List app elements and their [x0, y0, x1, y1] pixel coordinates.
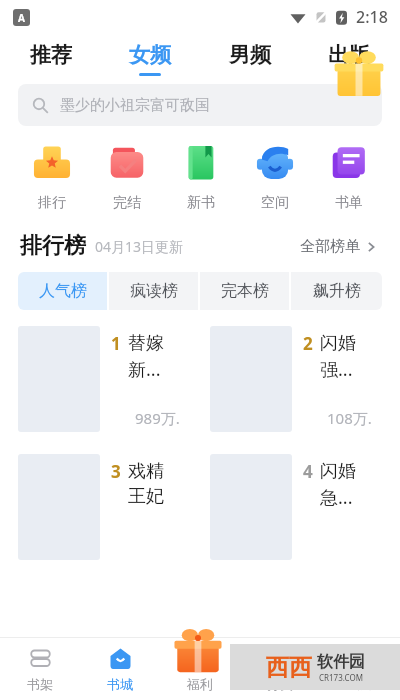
staticText: 排行榜 — [20, 232, 86, 260]
button[interactable]: 完结 — [89, 142, 164, 212]
button[interactable]: 空间 — [238, 142, 312, 212]
button[interactable]: 新书 — [164, 142, 238, 212]
button[interactable]: 疯读榜 — [109, 272, 198, 310]
staticText: 书架 — [27, 676, 53, 692]
staticText: 书城 — [107, 676, 133, 692]
staticText: 04月13日更新 — [95, 237, 184, 256]
staticText: 我的 — [347, 676, 373, 692]
staticText: 分类 — [267, 676, 293, 692]
button[interactable]: Categories — [240, 638, 320, 700]
button[interactable]: 3 — [18, 454, 190, 560]
staticText: 闪婚 — [320, 332, 356, 355]
staticText: 急... — [320, 485, 353, 510]
button[interactable]: Gift — [170, 624, 226, 680]
staticText: 男频 — [229, 42, 271, 68]
button[interactable]: Bookshelf — [0, 638, 80, 700]
staticText: 出版 — [328, 42, 370, 68]
staticText: 全部榜单 — [300, 237, 360, 256]
staticText: 1 — [111, 332, 121, 355]
button[interactable]: 1 — [18, 326, 190, 432]
staticText: 4 — [303, 460, 313, 483]
button[interactable]: 完本榜 — [200, 272, 289, 310]
staticText: 2:18 — [356, 6, 388, 28]
staticText: 替嫁 — [128, 332, 164, 355]
staticText: 飙升榜 — [313, 281, 361, 301]
staticText: 戏精 — [128, 460, 164, 483]
staticText: 完结 — [113, 194, 141, 212]
staticText: 空间 — [261, 194, 289, 212]
button[interactable]: 出版 — [324, 42, 374, 76]
staticText: 推荐 — [30, 42, 72, 68]
button[interactable]: 推荐 — [26, 42, 76, 76]
button[interactable]: Rewards — [160, 638, 240, 700]
staticText: 强... — [320, 357, 353, 382]
staticText: 2 — [303, 332, 313, 355]
button[interactable]: Bookstore — [80, 638, 160, 700]
button[interactable]: 墨少的小祖宗富可敌国 — [18, 84, 382, 126]
staticText: 完本榜 — [221, 281, 269, 301]
button[interactable]: 男频 — [225, 42, 275, 76]
staticText: 闪婚 — [320, 460, 356, 483]
staticText: A — [18, 11, 25, 25]
staticText: 女频 — [129, 42, 171, 68]
staticText: 989万. — [135, 408, 180, 428]
button[interactable]: 2 — [210, 326, 382, 432]
button[interactable]: 飙升榜 — [291, 272, 382, 310]
staticText: 3 — [111, 460, 121, 483]
staticText: 西西 — [266, 653, 312, 682]
staticText: 王妃 — [128, 485, 164, 508]
staticText: 新... — [128, 357, 161, 382]
button[interactable]: 排行 — [14, 142, 89, 212]
staticText: 福利 — [187, 676, 213, 692]
staticText: 人气榜 — [39, 281, 87, 301]
button[interactable]: Profile — [320, 638, 400, 700]
button[interactable]: Gift — [330, 46, 388, 104]
button[interactable]: 书单 — [312, 142, 386, 212]
staticText: 108万. — [327, 408, 372, 428]
staticText: 软件园 — [317, 652, 365, 672]
staticText: 墨少的小祖宗富可敌国 — [60, 96, 210, 115]
button[interactable]: 人气榜 — [18, 272, 107, 310]
button[interactable]: 全部榜单 — [297, 234, 380, 259]
staticText: 新书 — [187, 194, 215, 212]
staticText: CR173.COM — [319, 672, 363, 683]
staticText: 疯读榜 — [130, 281, 178, 301]
staticText: 排行 — [38, 194, 66, 212]
staticText: 书单 — [335, 194, 363, 212]
button[interactable]: 女频 — [125, 42, 175, 76]
button[interactable]: 4 — [210, 454, 382, 560]
